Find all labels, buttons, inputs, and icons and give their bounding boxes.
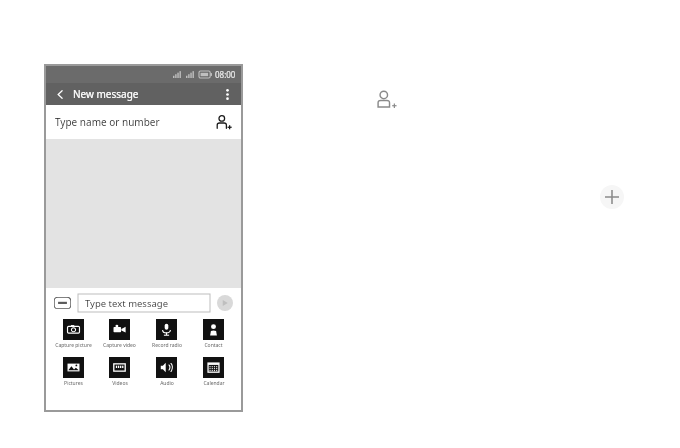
button[interactable]: Contact [190, 318, 237, 350]
button[interactable]: Pictures [50, 356, 96, 388]
button[interactable]: Message type [54, 297, 71, 309]
staticText: Contact [204, 342, 223, 349]
button[interactable]: Add [600, 185, 624, 209]
button[interactable]: More options [219, 86, 235, 102]
button[interactable]: Calendar [190, 356, 237, 388]
button[interactable]: Type text message [78, 294, 210, 312]
staticText: Type text message [85, 297, 169, 310]
button[interactable]: Back [52, 86, 68, 102]
button[interactable]: Add contact [372, 86, 400, 114]
button[interactable]: Capture picture [50, 318, 96, 350]
button[interactable]: Capture video [96, 318, 143, 350]
staticText: New message [73, 87, 139, 101]
staticText: Audio [160, 380, 174, 387]
button[interactable]: Record radio [143, 318, 190, 350]
button[interactable]: Videos [96, 356, 143, 388]
staticText: Capture picture [55, 342, 92, 349]
button[interactable]: Type name or number [46, 105, 241, 139]
button[interactable]: Add recipient [213, 112, 233, 132]
staticText: Record radio [152, 342, 182, 349]
staticText: Videos [112, 380, 128, 387]
staticText: Calendar [203, 380, 225, 387]
staticText: Capture video [103, 342, 136, 349]
staticText: Pictures [64, 380, 83, 387]
button[interactable]: Send [217, 295, 233, 311]
staticText: 08:00 [215, 69, 236, 80]
staticText: Type name or number [55, 115, 160, 129]
button[interactable]: Audio [143, 356, 190, 388]
